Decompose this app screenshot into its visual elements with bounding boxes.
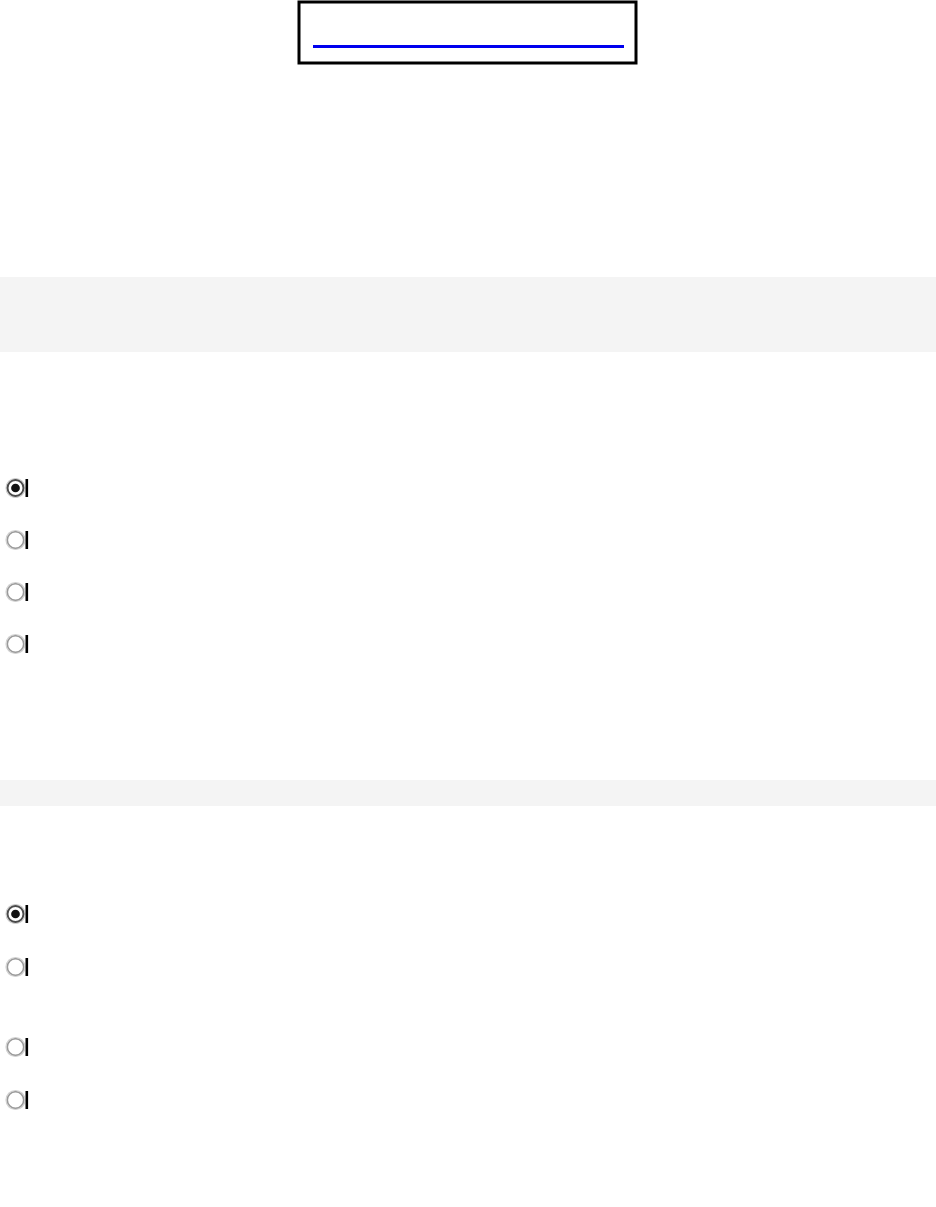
button[interactable]: Option 4 — [0, 632, 26, 656]
button[interactable]: Choice 1 — [0, 902, 26, 926]
button[interactable]: Choice 4 — [0, 1088, 26, 1112]
button[interactable]: Option 1 — [0, 476, 26, 500]
button[interactable]: Choice 2 — [0, 955, 26, 979]
button[interactable]: Option 2 — [0, 528, 26, 552]
button[interactable]: Option 3 — [0, 580, 26, 604]
button[interactable]: Choice 3 — [0, 1035, 26, 1059]
button[interactable]: Link box — [299, 2, 636, 63]
